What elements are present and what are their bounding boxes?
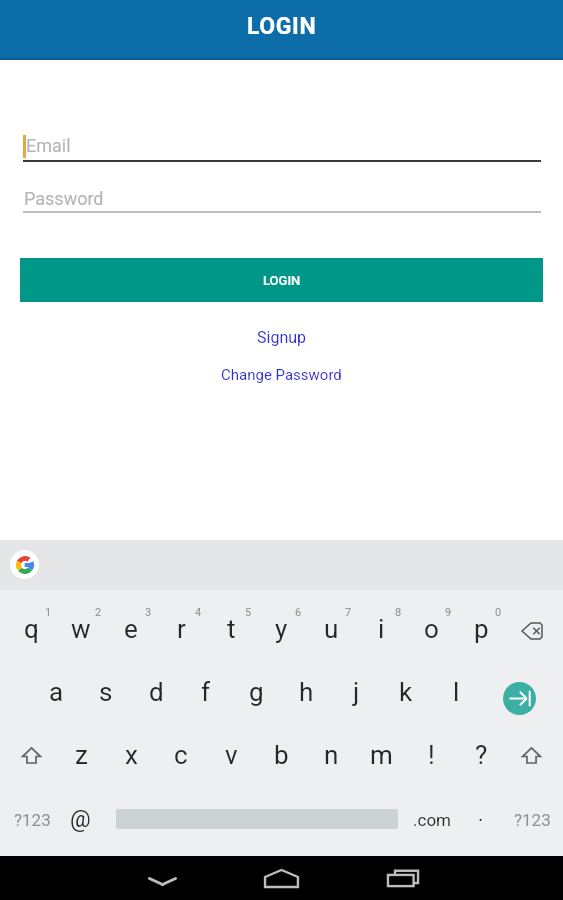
button[interactable]: ? [456, 723, 506, 786]
staticText: · [478, 808, 484, 831]
staticText: Signup [257, 328, 307, 347]
button[interactable]: t [206, 597, 256, 660]
staticText: t [227, 614, 236, 644]
button[interactable]: p [456, 597, 506, 660]
button[interactable]: ?123 [0, 788, 64, 851]
staticText: LOGIN [247, 13, 317, 40]
button[interactable]: k [381, 660, 431, 723]
staticText: i [378, 614, 385, 644]
staticText: .com [413, 810, 451, 830]
staticText: m [370, 740, 393, 770]
staticText: 8 [395, 606, 402, 619]
button[interactable]: h [281, 660, 331, 723]
button[interactable]: q [6, 597, 56, 660]
button[interactable]: c [156, 723, 206, 786]
button[interactable]: i [356, 597, 406, 660]
button[interactable]: g [231, 660, 281, 723]
staticText: g [249, 677, 264, 707]
staticText: q [24, 614, 39, 644]
button[interactable]: f [181, 660, 231, 723]
button[interactable]: j [331, 660, 381, 723]
staticText: w [71, 614, 91, 644]
staticText: 1 [45, 606, 52, 619]
button[interactable]: Recent apps [375, 856, 430, 900]
staticText: c [174, 740, 188, 770]
staticText: z [75, 740, 88, 770]
button[interactable]: a [31, 660, 81, 723]
staticText: 0 [495, 606, 502, 619]
button[interactable]: l [431, 660, 481, 723]
staticText: 6 [295, 606, 302, 619]
staticText: 3 [145, 606, 152, 619]
staticText: y [275, 614, 288, 644]
staticText: 7 [345, 606, 352, 619]
staticText: u [324, 614, 339, 644]
button[interactable]: b [256, 723, 306, 786]
button[interactable]: Hide keyboard [135, 856, 190, 900]
button[interactable]: Next field [481, 660, 556, 723]
button[interactable]: Signup [0, 323, 563, 351]
staticText: 9 [445, 606, 452, 619]
staticText: a [49, 677, 64, 707]
button[interactable]: y [256, 597, 306, 660]
button[interactable]: Change Password [0, 361, 563, 389]
staticText: Password [24, 188, 104, 209]
staticText: s [99, 677, 113, 707]
staticText: l [453, 677, 460, 707]
button[interactable]: x [106, 723, 156, 786]
staticText: k [399, 677, 413, 707]
staticText: 5 [245, 606, 252, 619]
staticText: ? [475, 740, 488, 770]
button[interactable]: Home [254, 856, 309, 900]
staticText: n [324, 740, 339, 770]
staticText: 2 [95, 606, 102, 619]
staticText: ?123 [14, 810, 51, 830]
staticText: e [124, 614, 138, 644]
button[interactable]: u [306, 597, 356, 660]
button[interactable]: Backspace [506, 597, 556, 660]
button[interactable]: s [81, 660, 131, 723]
button[interactable]: d [131, 660, 181, 723]
button[interactable]: v [206, 723, 256, 786]
button[interactable]: z [56, 723, 106, 786]
button[interactable]: o [406, 597, 456, 660]
staticText: r [177, 614, 186, 644]
button[interactable]: Space [96, 788, 404, 851]
button[interactable]: .com [404, 788, 460, 851]
staticText: d [149, 677, 164, 707]
button[interactable]: · [460, 788, 502, 851]
staticText: f [201, 677, 211, 707]
button[interactable]: LOGIN [20, 258, 543, 302]
button[interactable]: Google search [10, 550, 39, 579]
button[interactable]: Password input field [20, 186, 543, 218]
staticText: x [125, 740, 138, 770]
staticText: Change Password [221, 366, 342, 384]
staticText: LOGIN [263, 273, 301, 288]
staticText: @ [70, 806, 91, 833]
button[interactable]: e [106, 597, 156, 660]
button[interactable]: @ [64, 788, 96, 851]
staticText: o [424, 614, 439, 644]
button[interactable]: Email input field [20, 133, 543, 165]
button[interactable]: w [56, 597, 106, 660]
button[interactable]: r [156, 597, 206, 660]
button[interactable]: n [306, 723, 356, 786]
button[interactable]: ! [406, 723, 456, 786]
button[interactable]: m [356, 723, 406, 786]
button[interactable]: Shift [6, 723, 56, 786]
staticText: p [474, 614, 489, 644]
staticText: b [274, 740, 289, 770]
staticText: v [225, 740, 238, 770]
staticText: ?123 [514, 810, 551, 830]
staticText: j [353, 677, 360, 707]
button[interactable]: Shift [506, 723, 556, 786]
staticText: Email [26, 135, 71, 156]
staticText: h [299, 677, 314, 707]
staticText: 4 [195, 606, 202, 619]
staticText: ! [428, 740, 435, 770]
button[interactable]: ?123 [502, 788, 563, 851]
